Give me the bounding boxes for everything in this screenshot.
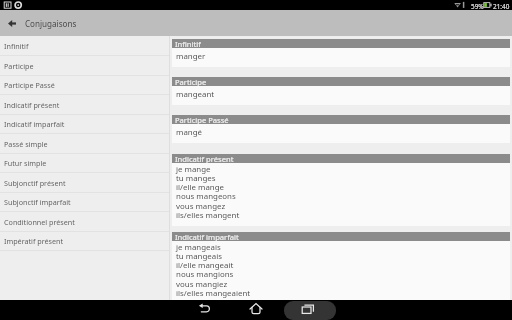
staticText: nous mangions	[176, 269, 234, 280]
staticText: mangé	[176, 127, 202, 138]
staticText: ils/elles mangeaient	[176, 288, 251, 299]
button[interactable]: Futur simple	[0, 153, 169, 173]
staticText: Conditionnel présent	[4, 217, 75, 227]
staticText: tu mangeais	[176, 251, 223, 262]
staticText: Passé simple	[4, 139, 48, 149]
button[interactable]: Participe	[172, 77, 510, 105]
button[interactable]: Conditionnel présent	[0, 212, 169, 232]
staticText: Participe	[175, 77, 207, 86]
staticText: Subjonctif présent	[4, 178, 66, 188]
staticText: Infinitif	[4, 41, 29, 51]
staticText: Futur simple	[4, 158, 47, 168]
staticText: 59%	[471, 2, 484, 11]
button[interactable]: Recent apps	[280, 300, 340, 320]
button[interactable]: Passé simple	[0, 134, 169, 154]
button[interactable]: Participe Passé	[172, 115, 510, 143]
button[interactable]: Indicatif imparfait	[0, 114, 169, 134]
staticText: 21:40	[493, 2, 510, 11]
button[interactable]: Back	[173, 300, 233, 320]
staticText: Conjugaisons	[25, 18, 77, 29]
staticText: Participe	[4, 61, 34, 71]
staticText: je mange	[176, 164, 211, 175]
button[interactable]: Participe Passé	[0, 75, 169, 95]
button[interactable]: Indicatif présent	[0, 95, 169, 115]
staticText: nous mangeons	[176, 191, 236, 202]
staticText: mangeant	[176, 89, 215, 100]
staticText: vous mangez	[176, 201, 226, 212]
staticText: Indicatif imparfait	[4, 119, 65, 129]
button[interactable]: Subjonctif présent	[0, 173, 169, 193]
button[interactable]: Impératif présent	[0, 231, 169, 251]
staticText: Participe Passé	[4, 80, 55, 90]
staticText: il/elle mange	[176, 182, 225, 193]
staticText: vous mangiez	[176, 279, 228, 290]
staticText: Infinitif	[175, 39, 201, 48]
button[interactable]: Back	[0, 10, 24, 36]
staticText: manger	[176, 51, 206, 62]
staticText: Subjonctif imparfait	[4, 197, 71, 207]
staticText: Indicatif présent	[175, 154, 234, 163]
staticText: Impératif présent	[4, 236, 64, 246]
button[interactable]: Indicatif imparfait	[172, 232, 510, 304]
staticText: Indicatif imparfait	[175, 232, 239, 241]
staticText: Participe Passé	[175, 115, 229, 124]
staticText: Indicatif présent	[4, 100, 60, 110]
button[interactable]: Subjonctif imparfait	[0, 192, 169, 212]
staticText: il/elle mangeait	[176, 260, 234, 271]
button[interactable]: Indicatif présent	[172, 154, 510, 226]
button[interactable]: Infinitif	[172, 39, 510, 67]
staticText: ils/elles mangent	[176, 210, 240, 221]
button[interactable]: Home	[226, 300, 286, 320]
button[interactable]: Participe	[0, 56, 169, 76]
staticText: je mangeais	[176, 242, 221, 253]
staticText: tu manges	[176, 173, 216, 184]
button[interactable]: Infinitif	[0, 36, 169, 56]
